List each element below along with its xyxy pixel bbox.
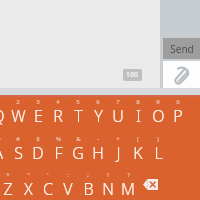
staticText: B [83,178,94,200]
staticText: A [0,142,3,164]
button[interactable]: 1 [0,98,8,131]
button[interactable]: ! [98,171,118,200]
staticText: - [97,135,99,143]
button[interactable]: 0 [168,98,188,131]
button[interactable]: 3 [28,98,48,131]
staticText: 0 [176,98,180,106]
staticText: ( [137,135,139,143]
button[interactable]: 4 [48,98,68,131]
staticText: 2 [16,98,20,106]
staticText: + [116,135,120,143]
button[interactable]: ' [38,171,58,200]
staticText: 160 [126,70,139,80]
staticText: X [24,178,33,200]
button[interactable]: 8 [128,98,148,131]
staticText: H [92,142,104,164]
staticText: @ [0,135,1,143]
staticText: 8 [136,98,140,106]
button[interactable]: 5 [68,98,88,131]
staticText: ) [157,135,159,143]
staticText: Q [0,105,5,127]
button[interactable]: Send [163,38,200,59]
button[interactable]: 2 [8,98,28,131]
button[interactable]: $ [28,135,48,168]
staticText: M [121,178,135,200]
button[interactable]: ; [78,171,98,200]
button[interactable]: ( [128,135,148,168]
button[interactable]: & [68,135,88,168]
button[interactable]: 7 [108,98,128,131]
staticText: 3 [36,98,40,106]
button[interactable]: ? [118,171,138,200]
staticText: G [72,142,84,164]
button[interactable]: 160 [0,0,160,88]
staticText: 9 [156,98,160,106]
staticText: R [53,105,63,127]
button[interactable]: " [18,171,38,200]
button[interactable]: 6 [88,98,108,131]
button[interactable]: + [108,135,128,168]
staticText: 5 [76,98,80,106]
staticText: O [152,105,165,127]
button[interactable]: : [58,171,78,200]
button[interactable]: Attach [163,61,200,88]
button[interactable]: - [88,135,108,168]
button[interactable]: ) [148,135,168,168]
staticText: ? [127,171,130,179]
staticText: U [112,105,124,127]
button[interactable]: Backspace [138,171,163,197]
staticText: Y [94,105,103,127]
staticText: V [63,178,73,200]
staticText: W [11,105,26,127]
staticText: 6 [96,98,100,106]
button[interactable]: 9 [148,98,168,131]
staticText: D [32,142,44,164]
staticText: K [133,142,143,164]
staticText: : [67,171,69,179]
button[interactable]: % [48,135,68,168]
staticText: ! [107,171,109,179]
staticText: # [16,135,20,143]
staticText: N [102,178,114,200]
staticText: Z [3,178,13,200]
staticText: Send [170,42,194,56]
staticText: I [136,105,141,127]
staticText: ' [47,171,49,179]
staticText: " [27,171,30,179]
staticText: 7 [116,98,120,106]
staticText: L [154,142,163,164]
staticText: E [34,105,43,127]
staticText: ; [87,171,89,179]
staticText: T [74,105,83,127]
staticText: $ [36,135,40,143]
staticText: C [43,178,53,200]
button[interactable]: @ [0,135,8,168]
staticText: J [116,142,121,164]
staticText: & [76,135,81,143]
staticText: 4 [56,98,60,106]
staticText: P [173,105,183,127]
staticText: % [56,135,61,143]
staticText: F [54,142,63,164]
button[interactable]: # [8,135,28,168]
button[interactable]: * [0,171,18,200]
staticText: S [14,142,23,164]
staticText: * [6,171,10,179]
